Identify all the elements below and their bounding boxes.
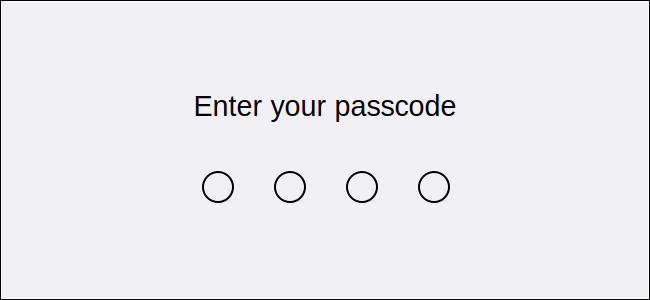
staticText: Enter your passcode xyxy=(193,90,456,122)
